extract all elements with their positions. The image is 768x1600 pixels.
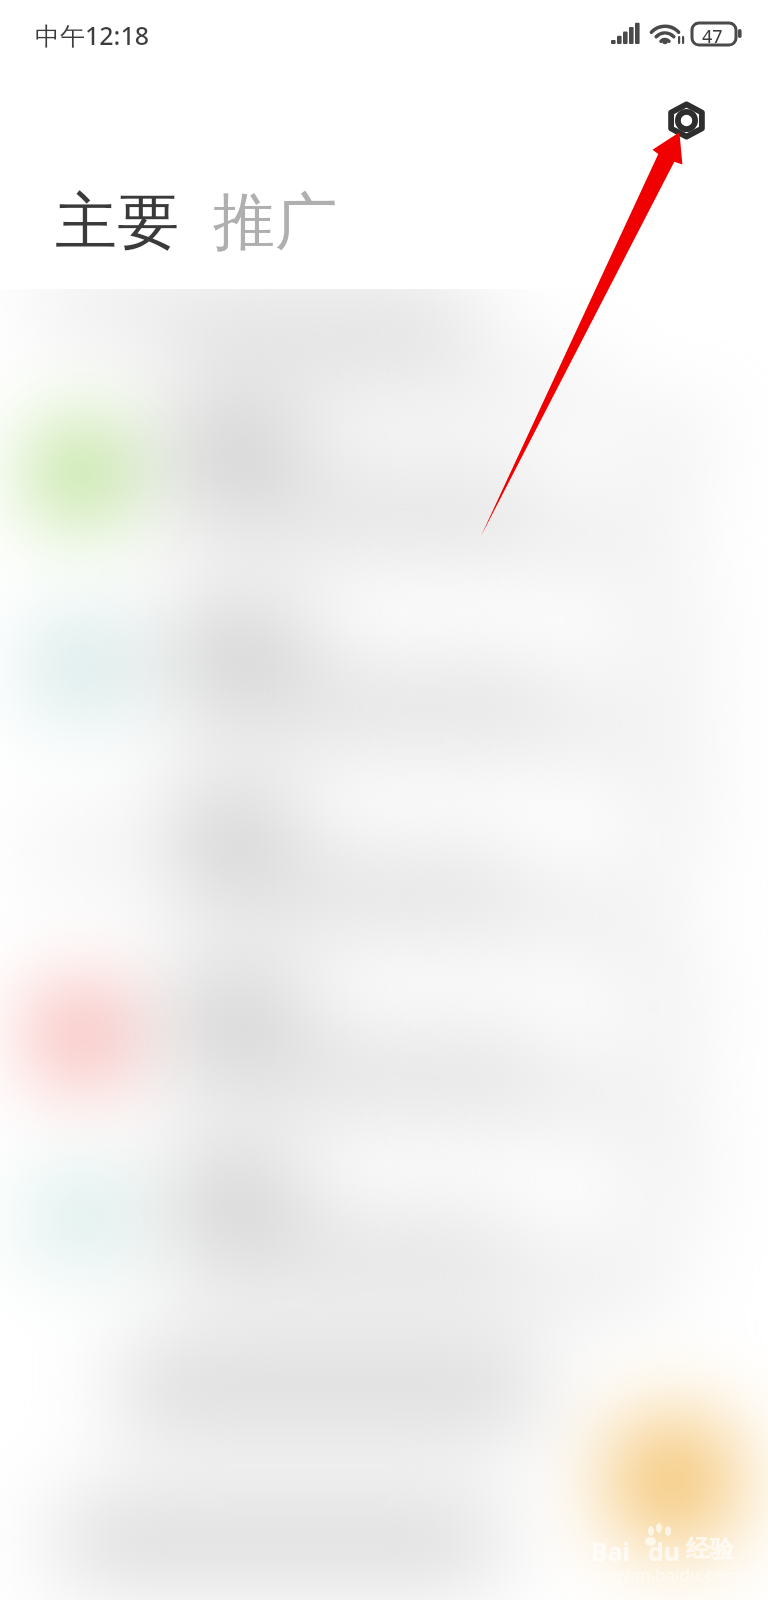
- button[interactable]: 主要: [49, 177, 185, 267]
- staticText: Bai: [591, 1534, 631, 1568]
- staticText: 47: [702, 24, 723, 49]
- staticText: jingyan.baidu.com: [592, 1563, 740, 1586]
- staticText: 经验: [686, 1534, 734, 1564]
- button[interactable]: 推广: [207, 177, 343, 267]
- staticText: du: [648, 1534, 681, 1568]
- staticText: 推广: [213, 183, 337, 261]
- button[interactable]: Settings: [655, 89, 718, 152]
- staticText: 中午12:18: [35, 18, 150, 52]
- staticText: 主要: [55, 183, 179, 261]
